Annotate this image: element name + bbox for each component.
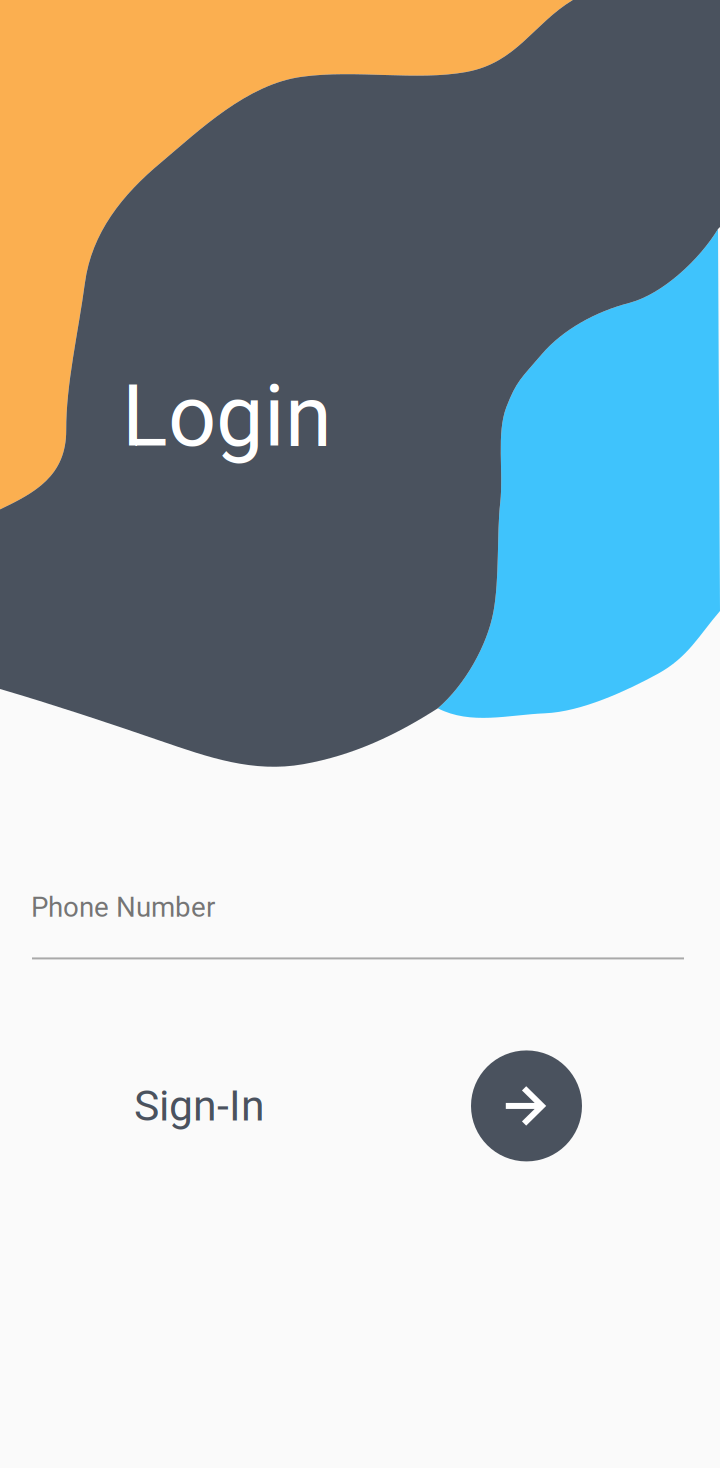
staticText: Sign-In xyxy=(134,1081,265,1131)
button[interactable]: Sign in xyxy=(471,1050,582,1161)
staticText: Login xyxy=(122,367,332,466)
staticText: Phone Number xyxy=(31,891,215,923)
